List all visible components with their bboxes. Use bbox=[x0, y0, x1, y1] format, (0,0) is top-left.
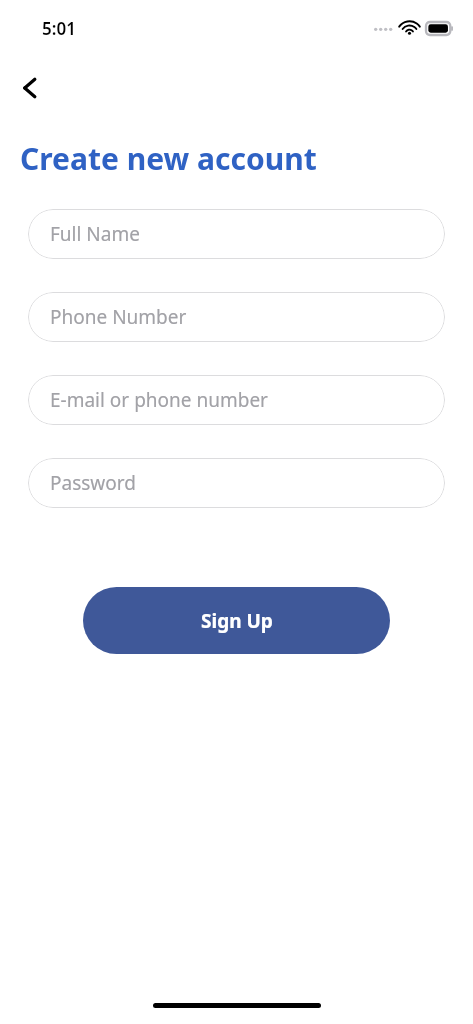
button[interactable]: Back bbox=[6, 64, 54, 112]
button[interactable]: Sign Up bbox=[83, 587, 390, 654]
button[interactable]: E-mail or phone number bbox=[28, 375, 445, 425]
staticText: Phone Number bbox=[50, 304, 187, 330]
staticText: 5:01 bbox=[42, 17, 76, 40]
staticText: Create new account bbox=[20, 138, 317, 179]
staticText: Sign Up bbox=[201, 608, 273, 634]
button[interactable]: Full Name bbox=[28, 209, 445, 259]
staticText: E-mail or phone number bbox=[50, 387, 268, 413]
staticText: Password bbox=[50, 470, 136, 496]
staticText: Full Name bbox=[50, 221, 140, 247]
button[interactable]: Phone Number bbox=[28, 292, 445, 342]
button[interactable]: Password bbox=[28, 458, 445, 508]
